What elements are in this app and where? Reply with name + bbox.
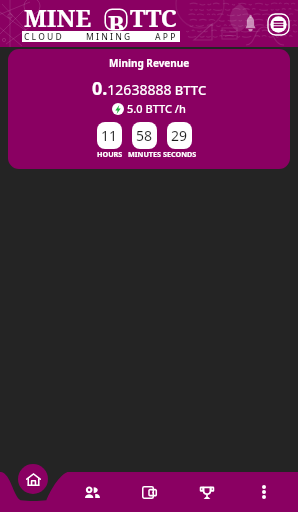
- button[interactable]: Rewards: [188, 474, 226, 510]
- staticText: 29: [171, 126, 188, 145]
- staticText: APP: [155, 31, 178, 42]
- button[interactable]: Menu: [267, 13, 290, 36]
- staticText: 11: [101, 126, 118, 145]
- button[interactable]: Friends: [73, 474, 111, 510]
- staticText: MINE: [24, 1, 92, 34]
- staticText: SECONDS: [163, 149, 197, 159]
- staticText: B: [108, 7, 125, 30]
- button[interactable]: Home: [18, 464, 48, 494]
- staticText: 58: [136, 126, 153, 145]
- staticText: TTC: [130, 1, 177, 34]
- staticText: HOURS: [97, 149, 123, 159]
- button[interactable]: Wallet: [130, 474, 168, 510]
- button[interactable]: Notifications: [243, 14, 258, 33]
- staticText: Mining Revenue: [109, 56, 190, 70]
- button[interactable]: More: [245, 474, 283, 510]
- staticText: 0.12638888 BTTC: [92, 76, 207, 101]
- staticText: CLOUD: [24, 31, 64, 42]
- staticText: MINING: [86, 31, 133, 42]
- staticText: MINUTES: [128, 149, 161, 159]
- staticText: 5.0 BTTC /h: [127, 101, 186, 116]
